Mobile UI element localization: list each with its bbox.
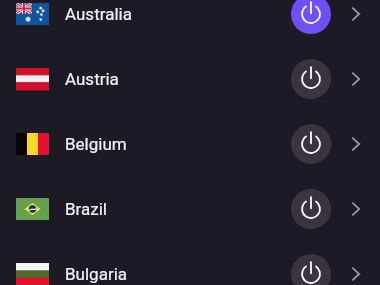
button[interactable]: Show servers — [346, 199, 366, 219]
button[interactable]: Bulgaria — [0, 241, 380, 285]
button[interactable]: Show servers — [346, 264, 366, 284]
button[interactable]: Show servers — [346, 134, 366, 154]
staticText: Brazil — [65, 199, 107, 219]
button[interactable]: Connect — [291, 59, 331, 99]
button[interactable]: Belgium — [0, 111, 380, 176]
staticText: Austria — [65, 69, 119, 89]
button[interactable]: Connect — [291, 189, 331, 229]
button[interactable]: Connect — [291, 254, 331, 285]
button[interactable]: Austria — [0, 46, 380, 111]
button[interactable]: Australia — [0, 0, 380, 46]
button[interactable]: Brazil — [0, 176, 380, 241]
staticText: Belgium — [65, 134, 127, 154]
button[interactable]: Show servers — [346, 69, 366, 89]
staticText: Bulgaria — [65, 264, 128, 284]
button[interactable]: Disconnect — [291, 0, 331, 34]
button[interactable]: Show servers — [346, 4, 366, 24]
button[interactable]: Connect — [291, 124, 331, 164]
staticText: Australia — [65, 4, 132, 24]
